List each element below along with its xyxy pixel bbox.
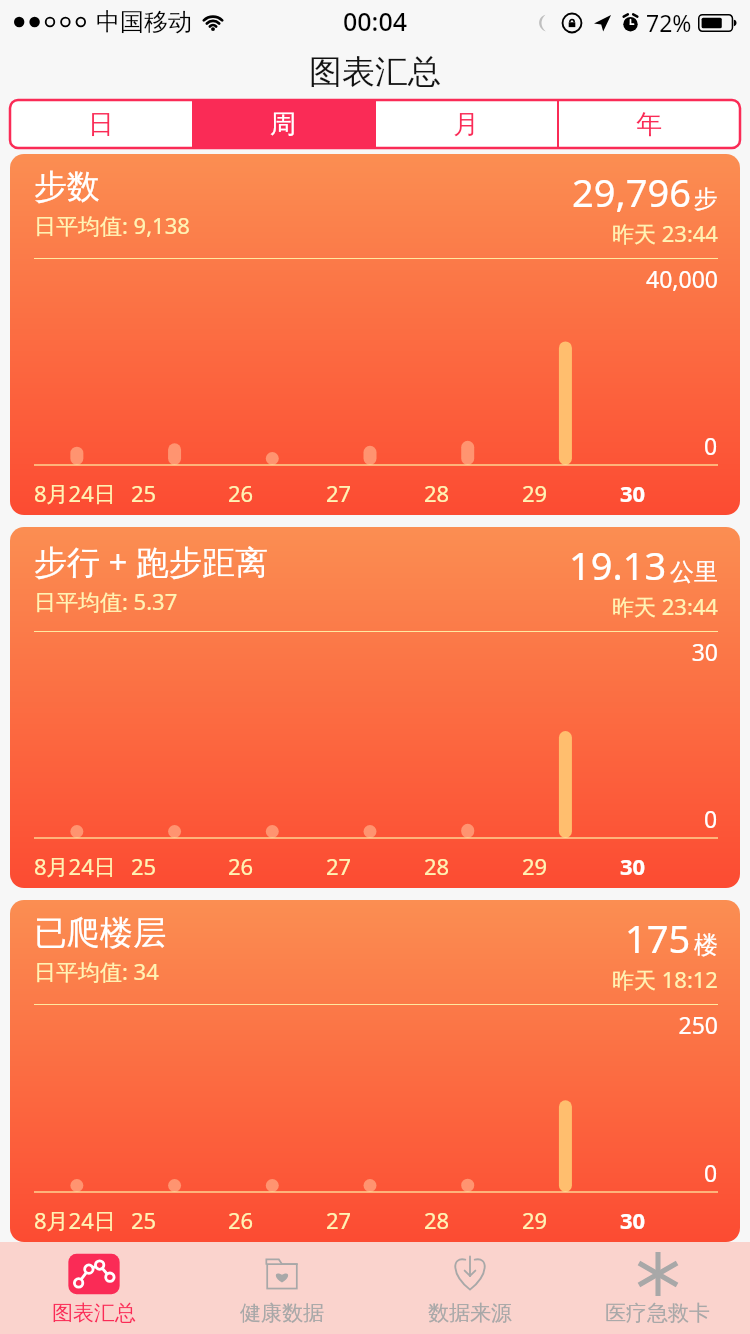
- staticText: 日平均值: 9,138: [34, 210, 190, 240]
- staticText: 29: [522, 478, 548, 508]
- staticText: 0: [704, 803, 718, 834]
- staticText: 27: [326, 851, 352, 881]
- button[interactable]: 步数: [10, 154, 740, 515]
- staticText: 25: [131, 1205, 157, 1235]
- staticText: 医疗急救卡: [605, 1300, 710, 1326]
- staticText: 月: [453, 108, 479, 141]
- staticText: 步: [694, 184, 718, 214]
- staticText: 8月24日: [34, 478, 116, 508]
- staticText: 26: [228, 1205, 254, 1235]
- staticText: 图表汇总: [52, 1300, 136, 1326]
- button[interactable]: 步行 + 跑步距离: [10, 527, 740, 888]
- button[interactable]: 已爬楼层: [10, 900, 740, 1242]
- button[interactable]: 年: [557, 100, 740, 148]
- staticText: 数据来源: [428, 1300, 512, 1326]
- staticText: 昨天 18:12: [612, 964, 718, 994]
- staticText: 00:04: [343, 4, 408, 38]
- staticText: 昨天 23:44: [612, 218, 718, 248]
- button[interactable]: 图表汇总: [0, 1242, 188, 1334]
- staticText: 日平均值: 5.37: [34, 586, 178, 616]
- staticText: 25: [131, 478, 157, 508]
- staticText: 30: [620, 1205, 646, 1235]
- button[interactable]: 日: [10, 100, 192, 148]
- staticText: 72%: [646, 7, 692, 38]
- staticText: 30: [620, 851, 646, 881]
- staticText: 日: [88, 108, 114, 141]
- staticText: 26: [228, 851, 254, 881]
- staticText: 40,000: [10, 263, 718, 294]
- staticText: 27: [326, 1205, 352, 1235]
- staticText: 图表汇总: [309, 51, 441, 93]
- staticText: 29: [522, 1205, 548, 1235]
- staticText: 25: [131, 851, 157, 881]
- staticText: 0: [704, 430, 718, 461]
- staticText: 29,796: [572, 166, 691, 218]
- staticText: 0: [704, 1157, 718, 1188]
- staticText: 8月24日: [34, 1205, 116, 1235]
- staticText: 26: [228, 478, 254, 508]
- button[interactable]: 数据来源: [376, 1242, 564, 1334]
- staticText: 250: [10, 1009, 718, 1040]
- staticText: 日平均值: 34: [34, 956, 159, 986]
- staticText: 步行 + 跑步距离: [34, 539, 269, 584]
- staticText: 28: [424, 478, 450, 508]
- button[interactable]: 医疗急救卡: [564, 1242, 750, 1334]
- staticText: 楼: [694, 930, 718, 960]
- staticText: 中国移动: [96, 7, 192, 37]
- staticText: 27: [326, 478, 352, 508]
- staticText: 年: [636, 108, 662, 141]
- staticText: 昨天 23:44: [612, 591, 718, 621]
- staticText: 8月24日: [34, 851, 116, 881]
- staticText: 28: [424, 1205, 450, 1235]
- staticText: 步数: [34, 166, 100, 208]
- button[interactable]: 健康数据: [188, 1242, 376, 1334]
- staticText: 公里: [670, 557, 718, 587]
- staticText: 28: [424, 851, 450, 881]
- staticText: 30: [620, 478, 646, 508]
- staticText: 已爬楼层: [34, 912, 166, 954]
- staticText: 175: [625, 912, 691, 964]
- staticText: 健康数据: [240, 1300, 324, 1326]
- button[interactable]: 周: [192, 100, 374, 148]
- staticText: 周: [270, 108, 296, 141]
- staticText: 19.13: [569, 539, 667, 591]
- staticText: 29: [522, 851, 548, 881]
- staticText: 30: [10, 636, 718, 667]
- button[interactable]: 月: [374, 100, 557, 148]
